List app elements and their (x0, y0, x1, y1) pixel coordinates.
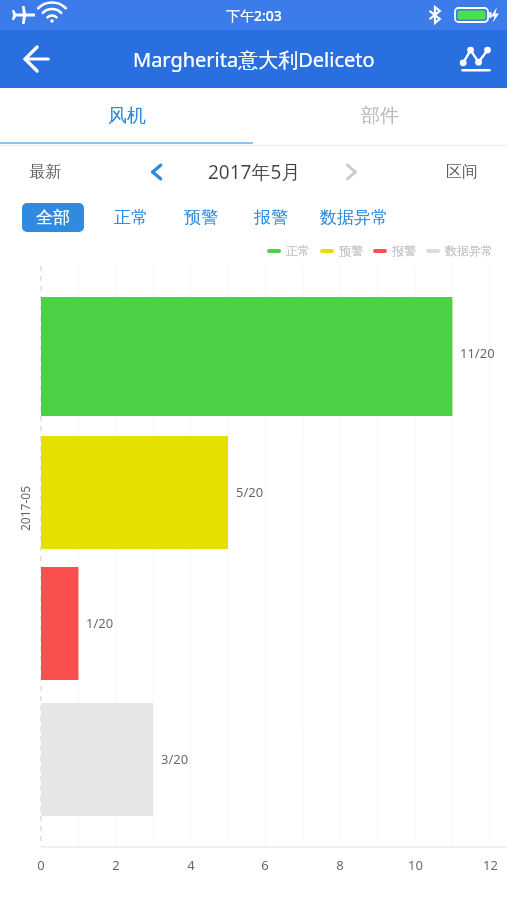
staticText: 1/20 (86, 614, 114, 632)
button[interactable]: Back (0, 30, 72, 88)
button[interactable]: 最新 (10, 150, 80, 194)
staticText: 2017年5月 (208, 159, 301, 185)
staticText: 4 (187, 856, 195, 874)
staticText: 下午2:03 (226, 6, 282, 25)
button[interactable]: Chart (445, 30, 507, 88)
button[interactable]: 风机 (0, 88, 253, 144)
staticText: Margherita意大利Deliceto (133, 46, 375, 73)
button[interactable]: 部件 (253, 88, 507, 144)
button[interactable]: 正常 (104, 203, 158, 232)
staticText: 报警 (254, 207, 288, 228)
staticText: 正常 (286, 243, 310, 258)
staticText: 全部 (36, 207, 70, 228)
staticText: 报警 (392, 243, 416, 258)
staticText: 预警 (184, 207, 218, 228)
staticText: 数据异常 (320, 207, 388, 228)
staticText: 0 (37, 856, 45, 874)
staticText: 2 (112, 856, 120, 874)
staticText: 8 (336, 856, 344, 874)
staticText: 2017-05 (17, 485, 33, 531)
staticText: 部件 (361, 104, 399, 128)
button[interactable]: 全部 (22, 203, 84, 232)
staticText: 10 (408, 856, 423, 874)
staticText: 5/20 (236, 483, 264, 501)
button[interactable]: 数据异常 (314, 203, 394, 232)
button[interactable]: Previous month (134, 150, 180, 194)
button[interactable]: 区间 (427, 150, 497, 194)
staticText: 11/20 (460, 344, 495, 362)
button[interactable]: Next month (328, 150, 374, 194)
staticText: 3/20 (161, 750, 189, 768)
staticText: 区间 (446, 162, 478, 182)
staticText: 12 (483, 856, 498, 874)
staticText: 风机 (108, 104, 146, 128)
staticText: 最新 (29, 162, 61, 182)
button[interactable]: 预警 (174, 203, 228, 232)
staticText: 正常 (114, 207, 148, 228)
staticText: 数据异常 (445, 243, 493, 258)
staticText: 预警 (339, 243, 363, 258)
staticText: 6 (261, 856, 269, 874)
button[interactable]: 报警 (244, 203, 298, 232)
